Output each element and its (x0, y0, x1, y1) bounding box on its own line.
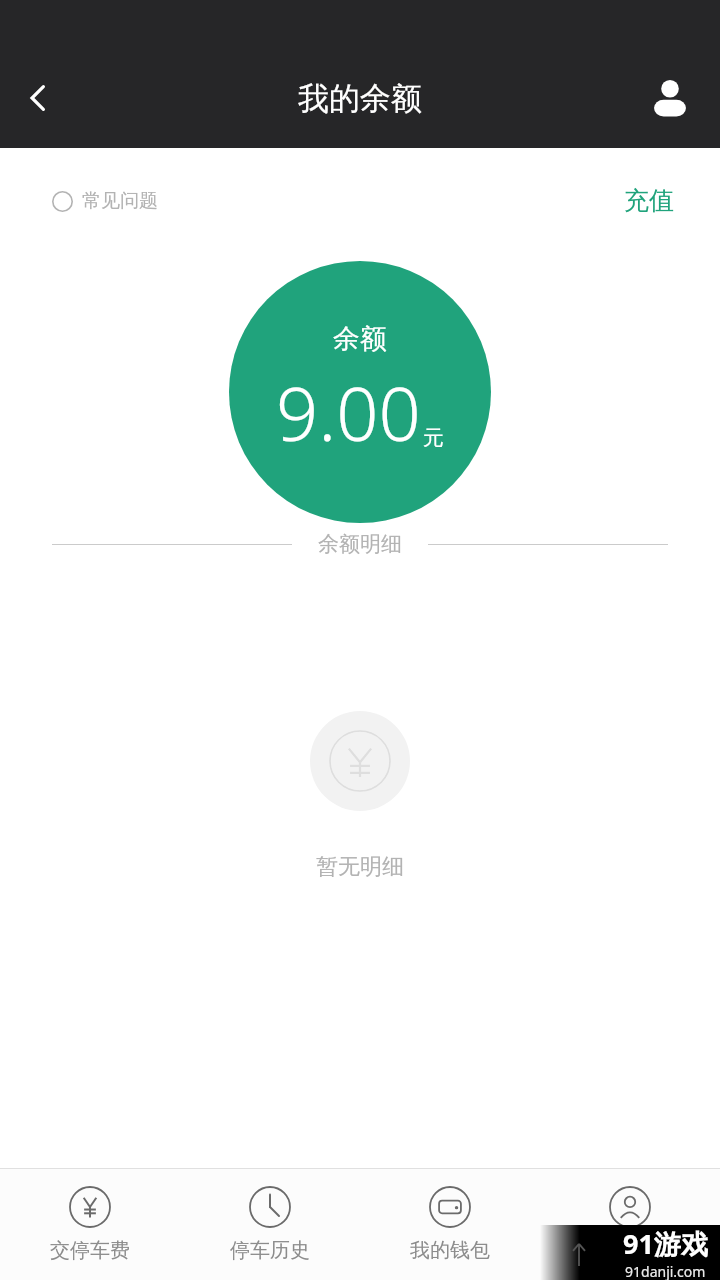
button[interactable]: 常见问题 (40, 179, 170, 223)
button[interactable]: 个人中心 (540, 1169, 720, 1280)
staticText: 9.00 (276, 362, 421, 463)
staticText: 暂无明细 (316, 853, 404, 881)
staticText: 余额 (333, 322, 387, 356)
button[interactable]: Back (0, 60, 76, 136)
staticText: 我的余额 (298, 79, 422, 118)
staticText: 余额明细 (318, 531, 402, 557)
button[interactable]: 充值 (614, 175, 684, 226)
staticText: 91danji.com (625, 1262, 706, 1280)
button[interactable]: 交停车费 (0, 1169, 180, 1280)
staticText: 个人中心 (590, 1238, 670, 1263)
button[interactable]: 余额 (229, 261, 491, 523)
staticText: 充值 (624, 185, 674, 216)
button[interactable]: 停车历史 (180, 1169, 360, 1280)
staticText: 我的钱包 (410, 1238, 490, 1263)
button[interactable]: 我的钱包 (360, 1169, 540, 1280)
staticText: 常见问题 (82, 189, 158, 213)
staticText: 91游戏 (623, 1225, 708, 1262)
staticText: 停车历史 (230, 1238, 310, 1263)
staticText: 元 (423, 425, 444, 451)
button[interactable]: Profile (638, 66, 702, 130)
staticText: 交停车费 (50, 1238, 130, 1263)
